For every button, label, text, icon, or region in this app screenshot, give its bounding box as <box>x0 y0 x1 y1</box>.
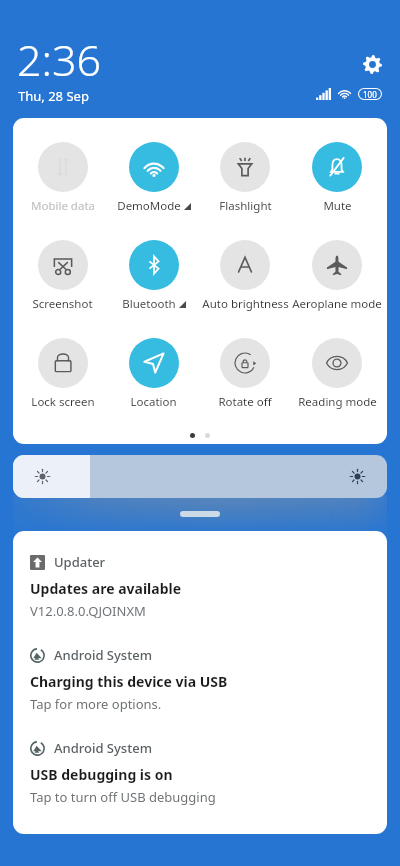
staticText: Updater <box>54 553 106 571</box>
staticText: Auto brightness <box>202 296 289 312</box>
staticText: 100 <box>363 89 377 100</box>
button[interactable]: Updater <box>13 553 387 620</box>
button[interactable]: Mobile data <box>17 142 108 214</box>
staticText: Charging this device via USB <box>30 672 228 691</box>
staticText: Android System <box>54 646 152 664</box>
button[interactable]: Mute <box>291 142 383 214</box>
staticText: V12.0.8.0.QJOINXM <box>30 602 146 620</box>
staticText: DemoMode <box>117 198 181 214</box>
button[interactable]: Location <box>108 338 199 410</box>
button[interactable]: Android System <box>13 739 387 806</box>
button[interactable]: Reading mode <box>291 338 383 410</box>
button[interactable]: Auto brightness <box>199 240 291 312</box>
staticText: Rotate off <box>218 394 272 410</box>
staticText: Reading mode <box>298 394 377 410</box>
staticText: Updates are available <box>30 579 182 598</box>
staticText: Mobile data <box>31 198 95 214</box>
button[interactable]: DemoMode <box>108 142 199 214</box>
staticText: Bluetooth <box>122 296 176 312</box>
staticText: USB debugging is on <box>30 765 173 784</box>
button[interactable]: Lock screen <box>17 338 108 410</box>
staticText: Lock screen <box>31 394 95 410</box>
button[interactable]: Android System <box>13 646 387 713</box>
button[interactable]: Brightness <box>13 455 387 498</box>
button[interactable]: Flashlight <box>199 142 291 214</box>
button[interactable]: Aeroplane mode <box>291 240 383 312</box>
button[interactable]: Bluetooth <box>108 240 199 312</box>
button[interactable]: Settings <box>358 50 386 78</box>
staticText: Mute <box>323 198 352 214</box>
staticText: Android System <box>54 739 152 757</box>
button[interactable]: Screenshot <box>17 240 108 312</box>
staticText: Tap to turn off USB debugging <box>30 788 216 806</box>
staticText: Tap for more options. <box>30 695 162 713</box>
staticText: Location <box>130 394 177 410</box>
staticText: Thu, 28 Sep <box>18 87 89 105</box>
staticText: Screenshot <box>32 296 93 312</box>
staticText: Aeroplane mode <box>292 296 382 312</box>
staticText: 2:36 <box>17 30 102 89</box>
staticText: Flashlight <box>219 198 272 214</box>
button[interactable]: Rotate off <box>199 338 291 410</box>
